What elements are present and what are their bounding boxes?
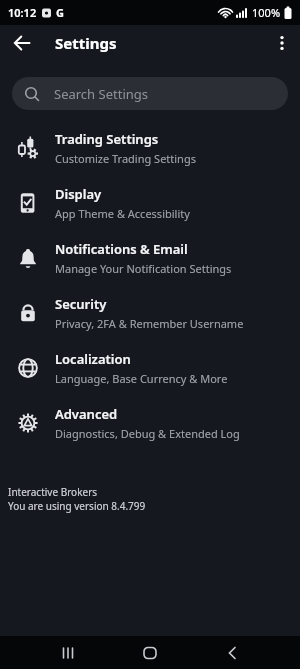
button[interactable]: Advanced [0, 395, 300, 450]
button[interactable] [264, 25, 300, 61]
staticText: Privacy, 2FA & Remember Username [55, 316, 244, 331]
staticText: Notifications & Email [55, 240, 188, 258]
staticText: Manage Your Notification Settings [55, 261, 232, 276]
button[interactable] [53, 638, 83, 668]
staticText: 100% [252, 5, 281, 20]
button[interactable]: Trading Settings [0, 120, 300, 175]
staticText: Trading Settings [55, 130, 159, 148]
staticText: G [56, 5, 64, 20]
button[interactable]: Display [0, 175, 300, 230]
staticText: Localization [55, 350, 131, 368]
staticText: Settings [55, 33, 117, 53]
staticText: You are using version 8.4.799 [8, 499, 146, 513]
staticText: Language, Base Currency & More [55, 371, 228, 386]
staticText: Search Settings [54, 85, 148, 103]
staticText: Display [55, 185, 102, 203]
staticText: App Theme & Accessibility [55, 206, 190, 221]
staticText: Security [55, 295, 107, 313]
button[interactable]: Localization [0, 340, 300, 395]
staticText: Customize Trading Settings [55, 151, 196, 166]
button[interactable] [135, 638, 165, 668]
button[interactable] [218, 638, 248, 668]
staticText: 10:12 [8, 5, 37, 20]
staticText: Advanced [55, 405, 118, 423]
button[interactable]: Notifications & Email [0, 230, 300, 285]
staticText: Interactive Brokers [8, 485, 98, 499]
button[interactable]: Search Settings [12, 77, 288, 110]
button[interactable] [0, 25, 44, 61]
staticText: Diagnostics, Debug & Extended Log [55, 426, 240, 441]
button[interactable]: Security [0, 285, 300, 340]
